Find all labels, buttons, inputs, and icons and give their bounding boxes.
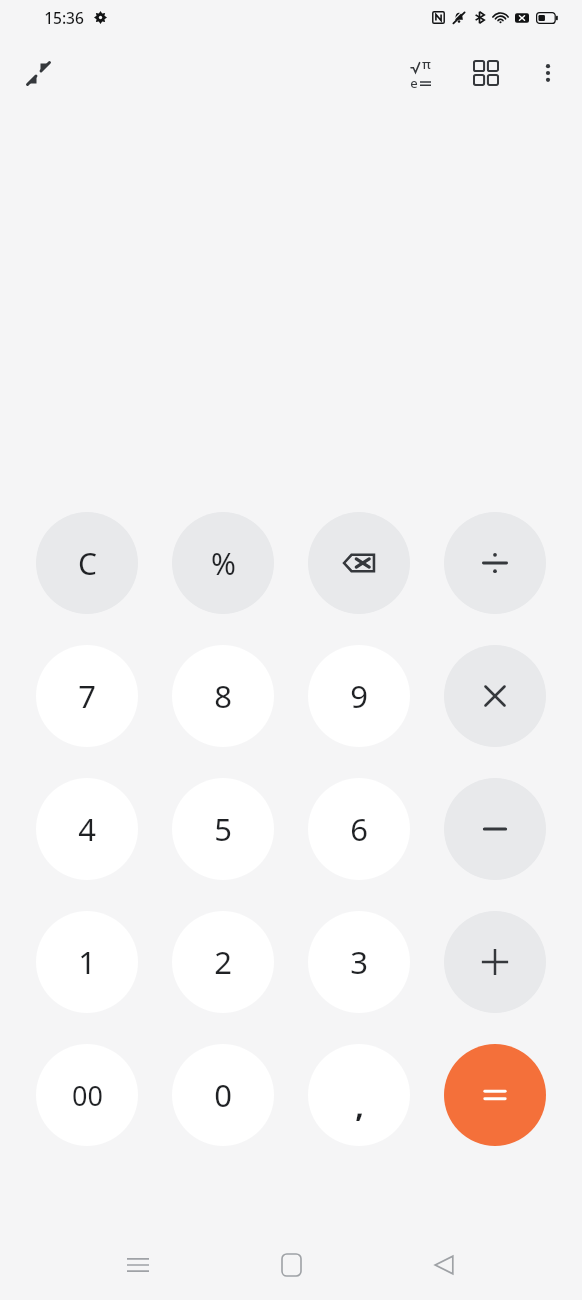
button[interactable]: 0 — [172, 1044, 274, 1146]
button[interactable]: Unit converter — [462, 49, 510, 97]
button[interactable]: More options — [524, 49, 572, 97]
button[interactable]: Scientific mode — [396, 49, 444, 97]
button[interactable]: Equals — [444, 1044, 546, 1146]
button[interactable]: 3 — [308, 911, 410, 1013]
button[interactable]: Divide — [444, 512, 546, 614]
button[interactable]: 6 — [308, 778, 410, 880]
staticText: 3 — [350, 941, 368, 983]
button[interactable]: Backspace — [308, 512, 410, 614]
button[interactable]: Multiply — [444, 645, 546, 747]
staticText: e — [410, 74, 418, 92]
staticText: 9 — [350, 675, 368, 717]
button[interactable]: Plus — [444, 911, 546, 1013]
button[interactable]: 00 — [36, 1044, 138, 1146]
button[interactable]: Home — [263, 1237, 319, 1293]
button[interactable]: Minus — [444, 778, 546, 880]
staticText: % — [211, 543, 236, 584]
button[interactable]: 8 — [172, 645, 274, 747]
button[interactable]: , — [308, 1044, 410, 1146]
staticText: 2 — [214, 941, 232, 983]
button[interactable]: 2 — [172, 911, 274, 1013]
staticText: 0 — [214, 1074, 232, 1116]
staticText: , — [355, 1085, 364, 1126]
staticText: 00 — [72, 1077, 103, 1114]
staticText: 1 — [78, 941, 96, 983]
staticText: 7 — [78, 675, 96, 717]
button[interactable]: 9 — [308, 645, 410, 747]
staticText: 4 — [78, 808, 96, 850]
staticText: 5 — [214, 808, 232, 850]
button[interactable]: 5 — [172, 778, 274, 880]
button[interactable]: 4 — [36, 778, 138, 880]
button[interactable]: % — [172, 512, 274, 614]
staticText: 15:36 — [44, 7, 84, 28]
button[interactable]: Back — [416, 1237, 472, 1293]
staticText: C — [78, 543, 97, 584]
button[interactable]: C — [36, 512, 138, 614]
button[interactable]: 7 — [36, 645, 138, 747]
button[interactable]: Recent apps — [110, 1237, 166, 1293]
staticText: π — [422, 55, 431, 73]
button[interactable]: Collapse — [14, 49, 62, 97]
staticText: 6 — [350, 808, 368, 850]
button[interactable]: 1 — [36, 911, 138, 1013]
staticText: 8 — [214, 675, 232, 717]
